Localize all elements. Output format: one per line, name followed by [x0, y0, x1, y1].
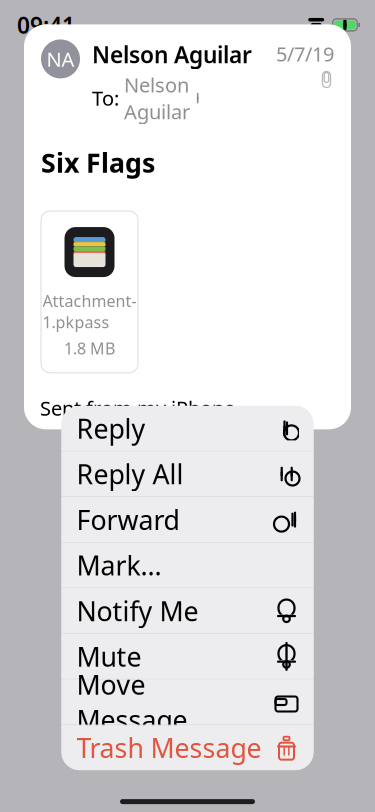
staticText: Attachment-1.pkpass: [42, 290, 136, 333]
button[interactable]: Trash Message: [61, 725, 313, 770]
staticText: To:: [92, 85, 119, 111]
staticText: Six Flags: [41, 145, 155, 180]
staticText: Reply All: [76, 456, 183, 492]
staticText: Sent from my iPhone: [40, 395, 235, 421]
staticText: 5/7/19: [276, 40, 334, 67]
staticText: Mute: [76, 639, 141, 674]
staticText: Move Message...: [76, 667, 208, 737]
button[interactable]: Reply: [61, 406, 313, 451]
button[interactable]: Mute: [61, 634, 313, 679]
button[interactable]: Reply All: [61, 451, 313, 496]
button[interactable]: Move Message...: [61, 679, 313, 724]
staticText: Reply: [76, 411, 145, 446]
staticText: Nelson Aguilar: [124, 71, 190, 125]
staticText: Trash Message: [76, 730, 261, 765]
staticText: 09:41: [17, 10, 75, 40]
button[interactable]: Mark...: [61, 543, 313, 588]
button[interactable]: Attachment-1.pkpass: [41, 211, 138, 373]
staticText: Forward: [76, 502, 179, 537]
staticText: Notify Me: [76, 593, 198, 628]
button[interactable]: To:: [92, 71, 202, 125]
staticText: NA: [46, 46, 74, 72]
staticText: Nelson Aguilar: [92, 39, 252, 69]
button[interactable]: Forward: [61, 497, 313, 542]
staticText: Mark...: [76, 547, 161, 583]
button[interactable]: Notify Me: [61, 588, 313, 633]
staticText: 1.8 MB: [64, 338, 115, 359]
